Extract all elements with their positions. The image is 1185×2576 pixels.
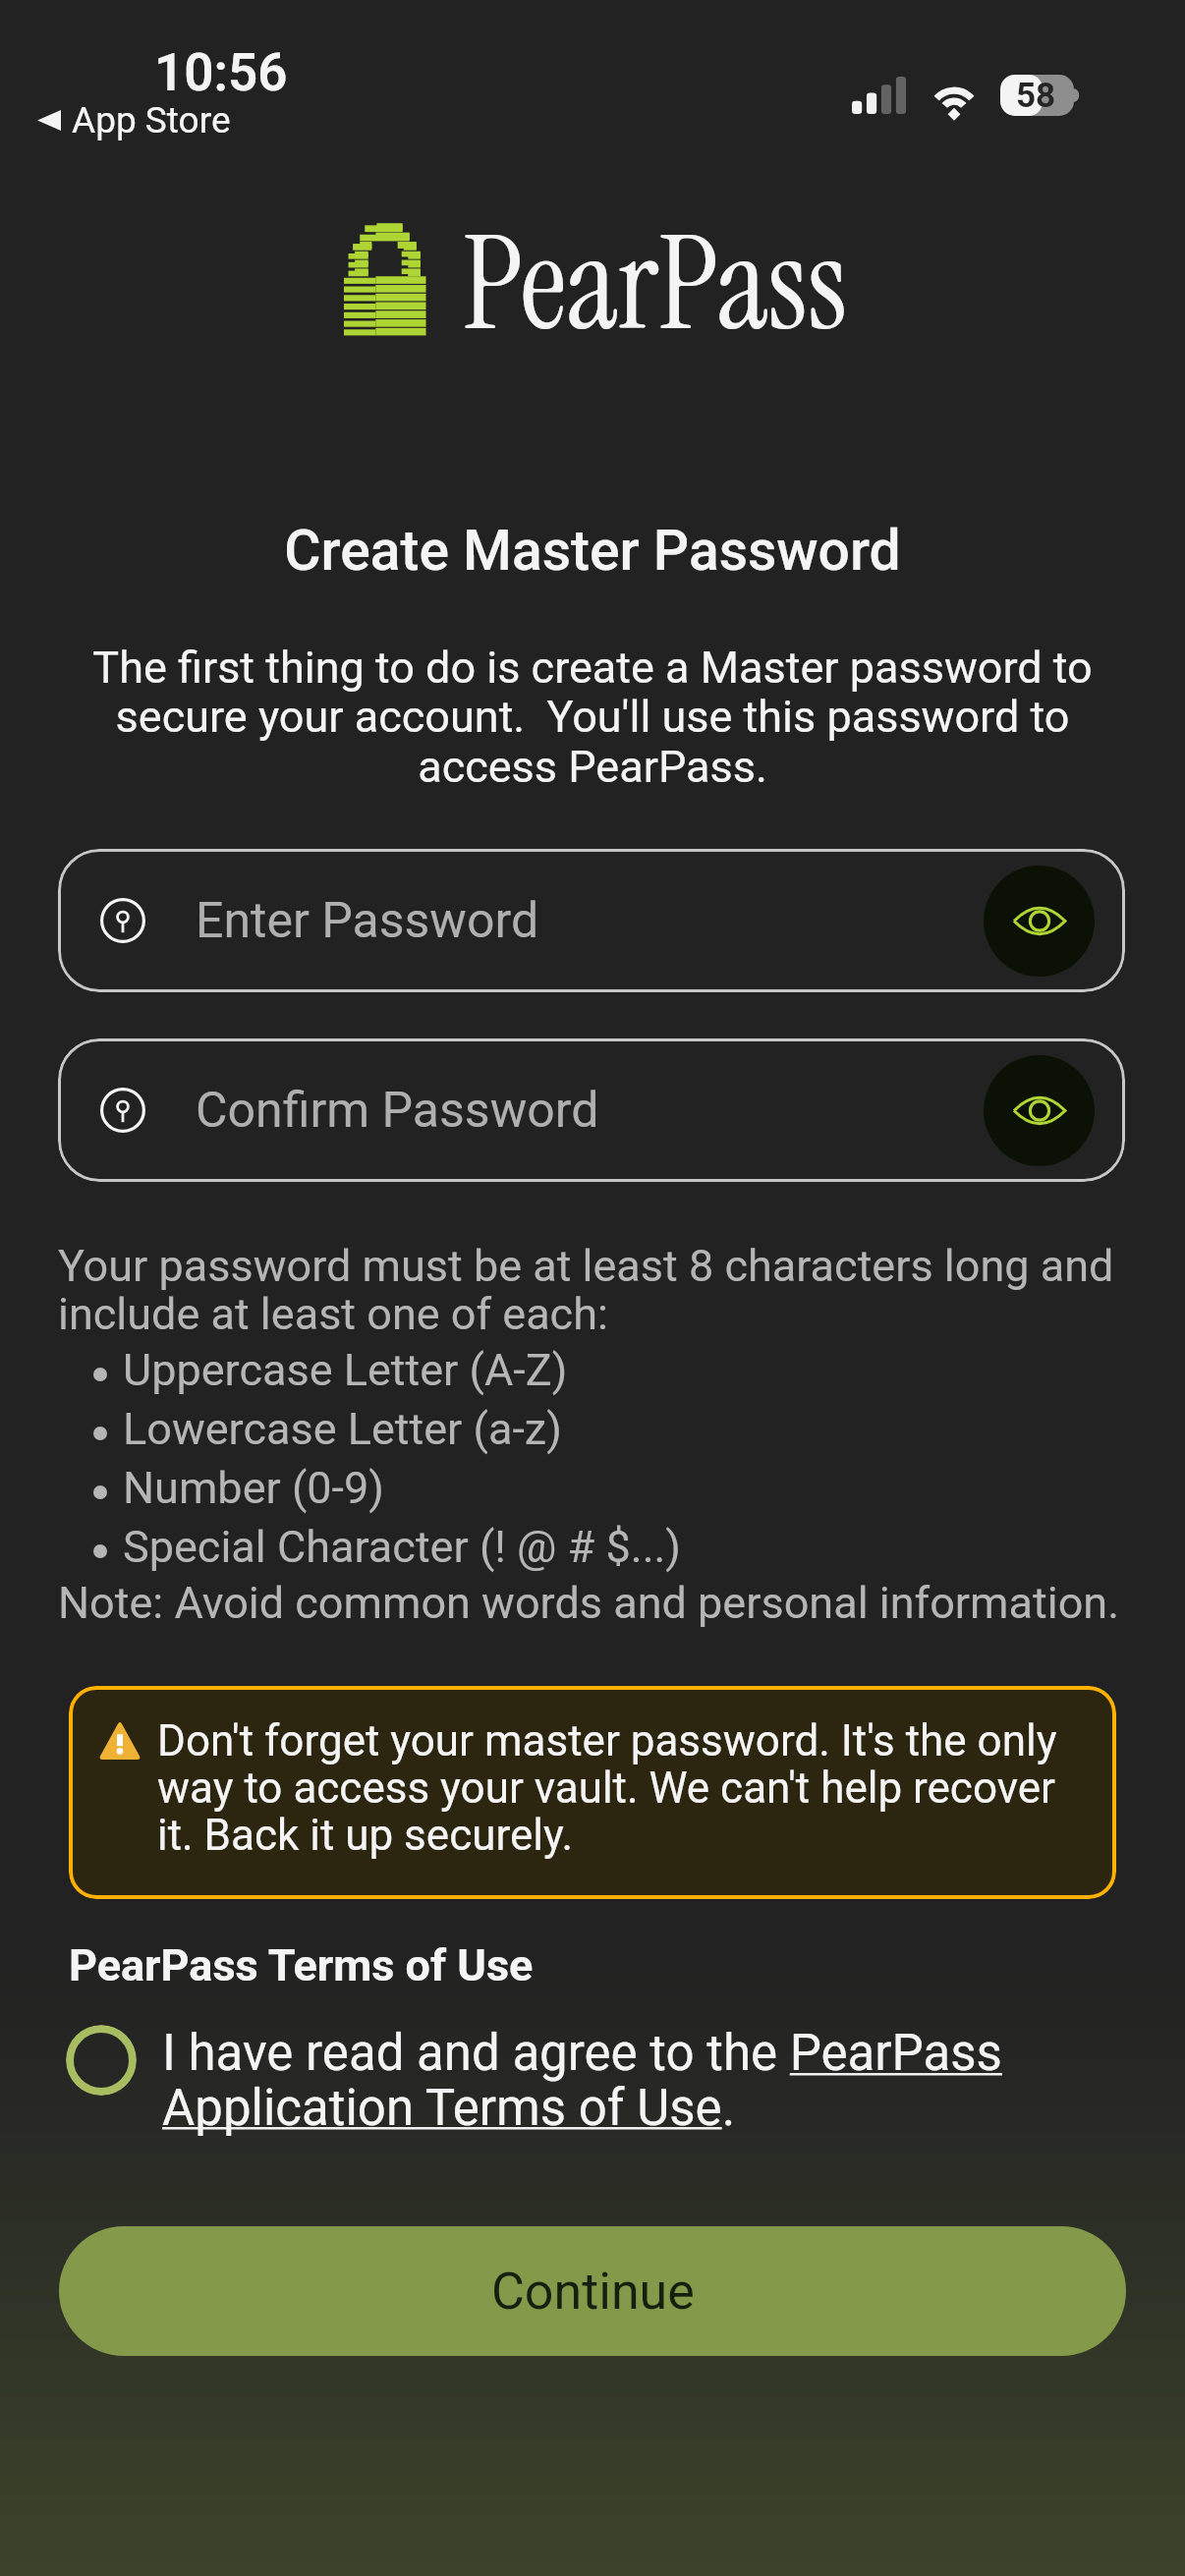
staticText: Note: Avoid common words and personal in… [58,1577,1120,1629]
staticText: Lowercase Letter (a-z) [123,1403,562,1455]
button[interactable]: Continue [59,2226,1126,2356]
staticText: The first thing to do is create a Master… [51,642,1134,793]
staticText: Confirm Password [196,1082,599,1140]
staticText: Number (0-9) [123,1462,385,1514]
staticText: Enter Password [196,892,539,950]
button[interactable]: I have read and agree to the PearPass Ap… [66,2024,1146,2137]
staticText: Uppercase Letter (A-Z) [123,1344,568,1396]
staticText: Continue [491,2262,695,2322]
staticText: Special Character (! @ # $...) [123,1521,682,1573]
staticText: 58 [1016,76,1056,116]
button[interactable]: Enter Password [58,849,1125,992]
button[interactable]: Show password [984,1055,1095,1166]
staticText: Don't forget your master password. It's … [157,1715,1099,1861]
staticText: PearPass Terms of Use [69,1939,534,1991]
staticText: App Store [72,99,231,141]
staticText: Create Master Password [0,518,1185,584]
button[interactable]: Confirm Password [58,1038,1125,1182]
staticText: PearPass [463,200,848,367]
staticText: 10:56 [154,42,288,103]
staticText: I have read and agree to the PearPass Ap… [162,2024,1146,2137]
button[interactable]: Show password [984,866,1095,977]
staticText: Your password must be at least 8 charact… [58,1240,1136,1340]
